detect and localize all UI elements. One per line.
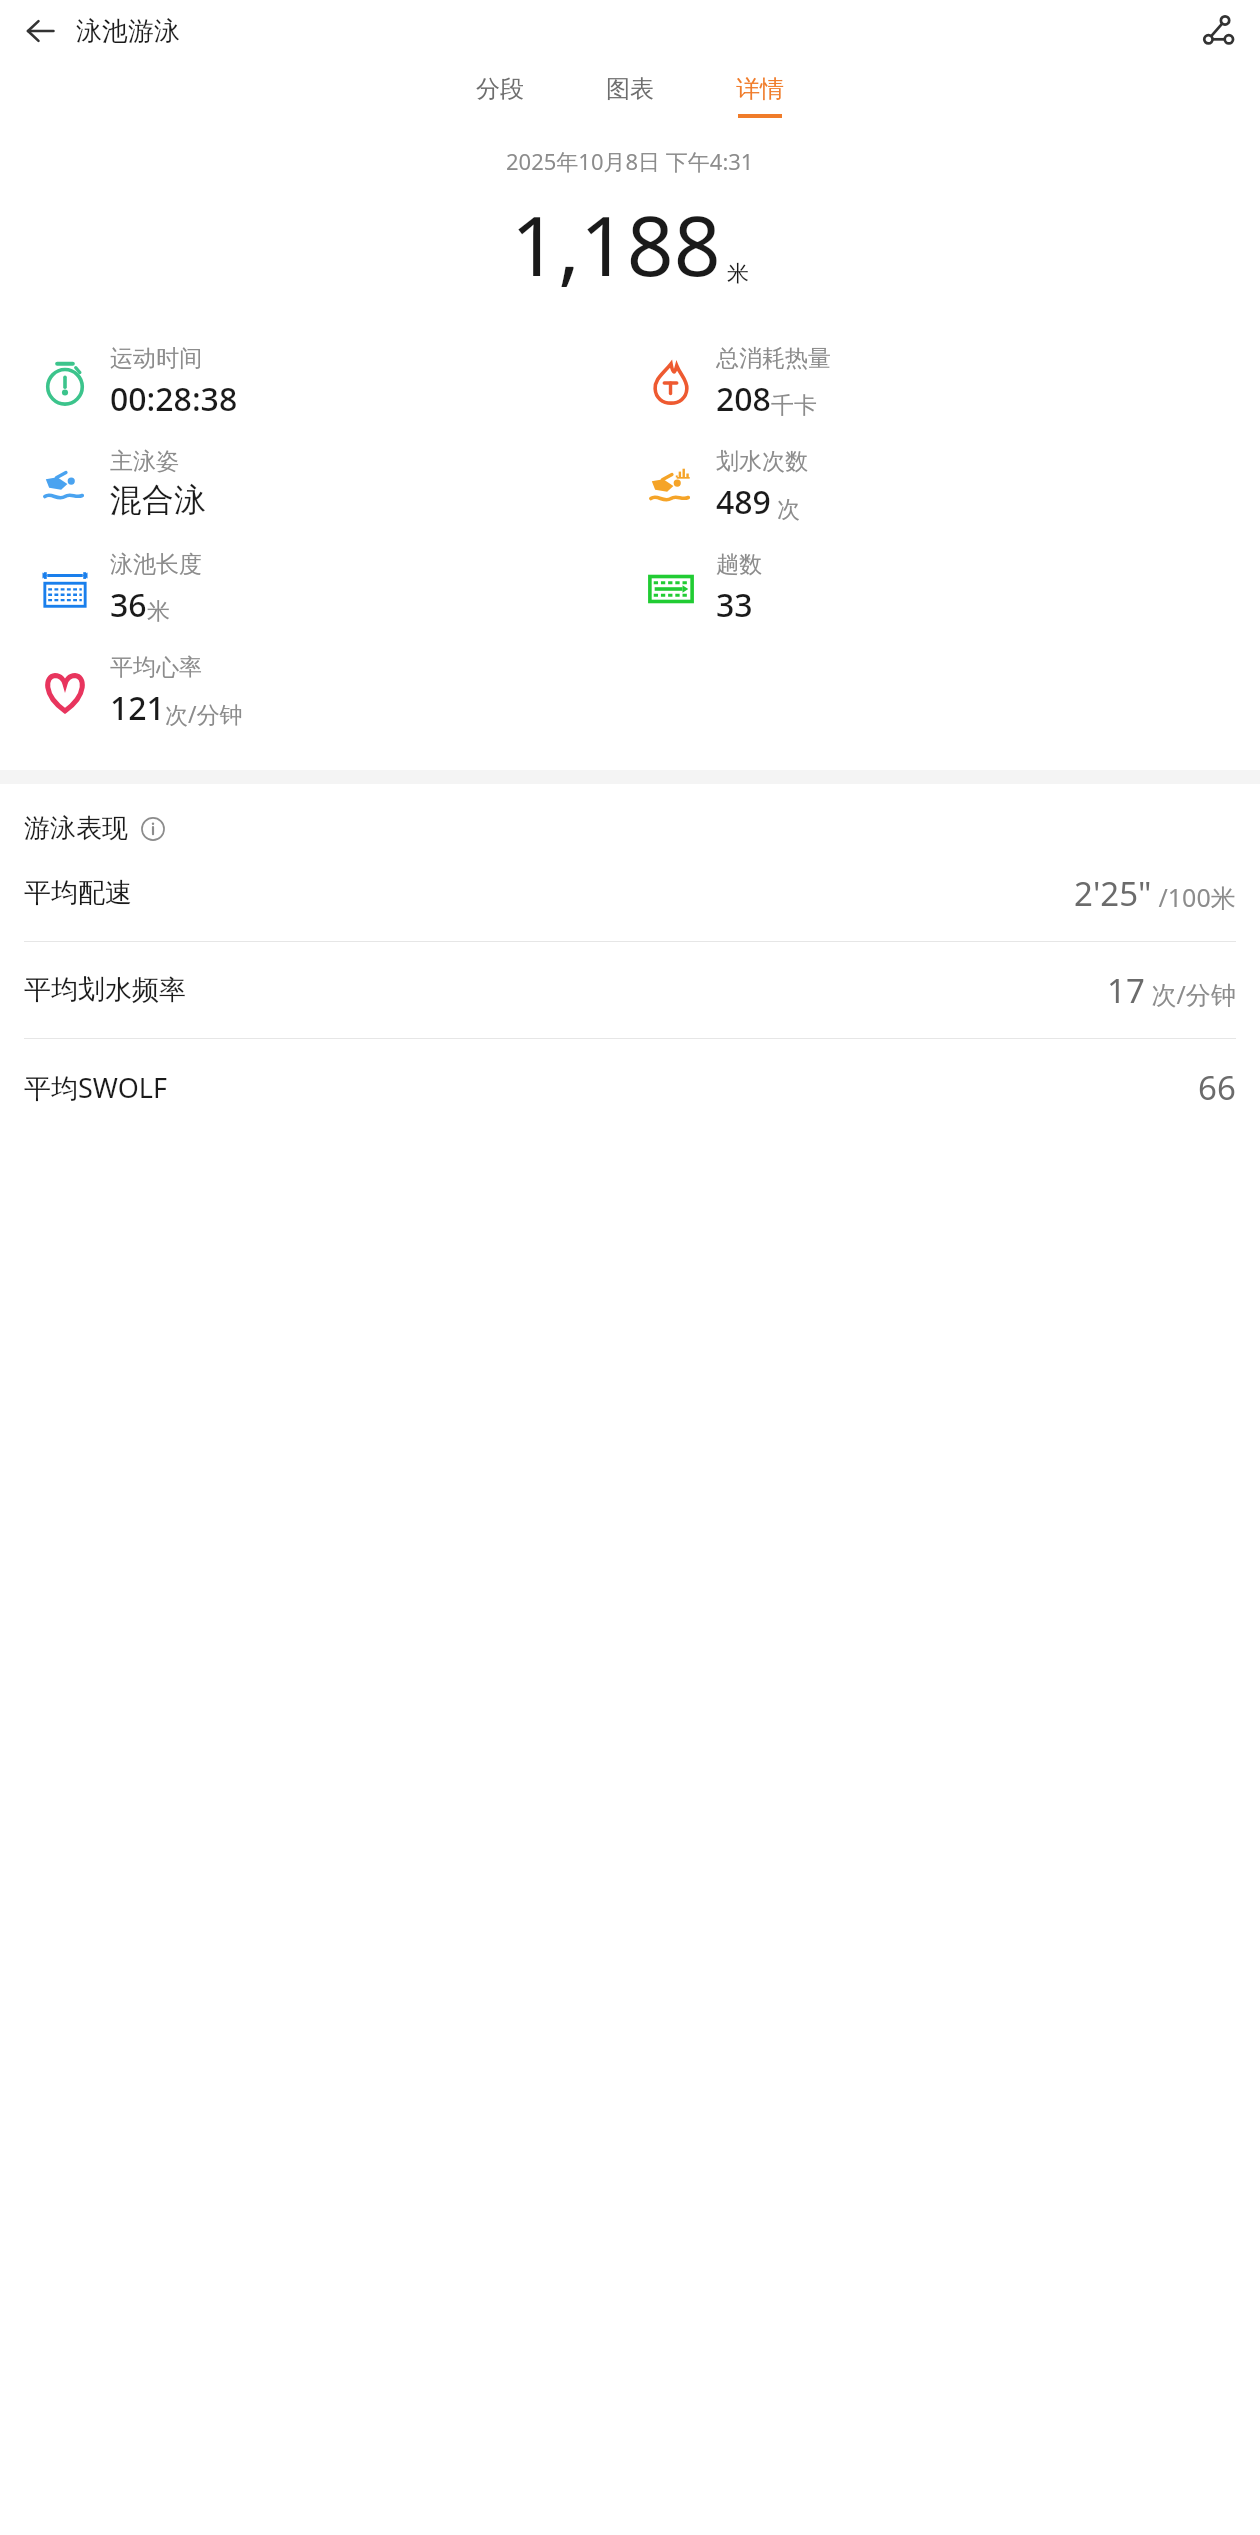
button[interactable]: 分段 bbox=[458, 68, 542, 124]
button[interactable]: 划水次数 bbox=[640, 447, 808, 524]
staticText: 489 bbox=[716, 480, 771, 524]
staticText: 主泳姿 bbox=[110, 447, 179, 476]
staticText: 平均心率 bbox=[110, 653, 202, 682]
staticText: 混合泳 bbox=[110, 480, 206, 520]
button[interactable]: 详情 bbox=[718, 68, 802, 124]
button[interactable]: 图表 bbox=[588, 68, 672, 124]
button[interactable]: 总消耗热量 bbox=[640, 344, 831, 421]
staticText: 17 bbox=[1107, 968, 1145, 1013]
staticText: 详情 bbox=[736, 74, 784, 104]
staticText: /100米 bbox=[1152, 880, 1236, 914]
staticText: 2'25" bbox=[1074, 871, 1152, 916]
staticText: 平均配速 bbox=[24, 876, 1074, 910]
staticText: 次 bbox=[771, 492, 800, 523]
staticText: 图表 bbox=[606, 74, 654, 104]
staticText: 66 bbox=[1198, 1065, 1236, 1110]
staticText: 208 bbox=[716, 377, 771, 421]
staticText: 趟数 bbox=[716, 550, 762, 579]
button[interactable]: 趟数 bbox=[640, 550, 762, 627]
staticText: 次/分钟 bbox=[1145, 977, 1236, 1011]
button[interactable]: 平均划水频率 bbox=[24, 942, 1236, 1038]
staticText: 泳池游泳 bbox=[76, 15, 180, 48]
button[interactable]: 平均SWOLF bbox=[24, 1039, 1236, 1135]
staticText: 划水次数 bbox=[716, 447, 808, 476]
button[interactable]: Info bbox=[138, 814, 168, 844]
staticText: 千卡 bbox=[771, 391, 817, 420]
staticText: 总消耗热量 bbox=[716, 344, 831, 373]
staticText: 33 bbox=[716, 583, 753, 627]
staticText: 平均SWOLF bbox=[24, 1069, 1198, 1106]
staticText: 00:28:38 bbox=[110, 377, 238, 421]
staticText: 泳池长度 bbox=[110, 550, 202, 579]
staticText: 游泳表现 bbox=[24, 812, 128, 845]
button[interactable]: 泳池长度 bbox=[34, 550, 202, 627]
staticText: 米 bbox=[727, 260, 749, 288]
staticText: 121 bbox=[110, 686, 165, 730]
staticText: 1,188 bbox=[511, 188, 721, 300]
staticText: 平均划水频率 bbox=[24, 973, 1107, 1007]
staticText: 36 bbox=[110, 583, 147, 627]
button[interactable]: Back bbox=[14, 5, 66, 57]
staticText: 2025年10月8日 下午4:31 bbox=[506, 146, 754, 176]
button[interactable]: 平均配速 bbox=[24, 845, 1236, 941]
button[interactable]: 运动时间 bbox=[34, 344, 238, 421]
button[interactable]: Share bbox=[1190, 3, 1246, 59]
staticText: 米 bbox=[147, 597, 170, 626]
staticText: 运动时间 bbox=[110, 344, 202, 373]
button[interactable]: 主泳姿 bbox=[34, 447, 206, 520]
staticText: 分段 bbox=[476, 74, 524, 104]
button[interactable]: 平均心率 bbox=[34, 653, 243, 730]
staticText: 次/分钟 bbox=[165, 698, 243, 729]
